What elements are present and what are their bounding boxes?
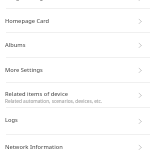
- staticText: Related items of device: [5, 90, 68, 98]
- button[interactable]: Image settings: [0, 0, 150, 10]
- staticText: Related automation, scenarios, devices, …: [5, 98, 103, 104]
- button[interactable]: Network Information: [0, 134, 150, 150]
- staticText: Homepage Card: [5, 17, 50, 25]
- staticText: Network Information: [5, 143, 63, 150]
- staticText: Image settings: [5, 0, 138, 2]
- button[interactable]: Related items of device: [0, 82, 150, 107]
- staticText: More Settings: [5, 66, 43, 74]
- staticText: Logs: [5, 116, 18, 124]
- button[interactable]: More Settings: [0, 57, 150, 82]
- button[interactable]: Homepage Card: [0, 8, 150, 33]
- button[interactable]: Logs: [0, 107, 150, 133]
- button[interactable]: Albums: [0, 32, 150, 57]
- staticText: Albums: [5, 41, 26, 49]
